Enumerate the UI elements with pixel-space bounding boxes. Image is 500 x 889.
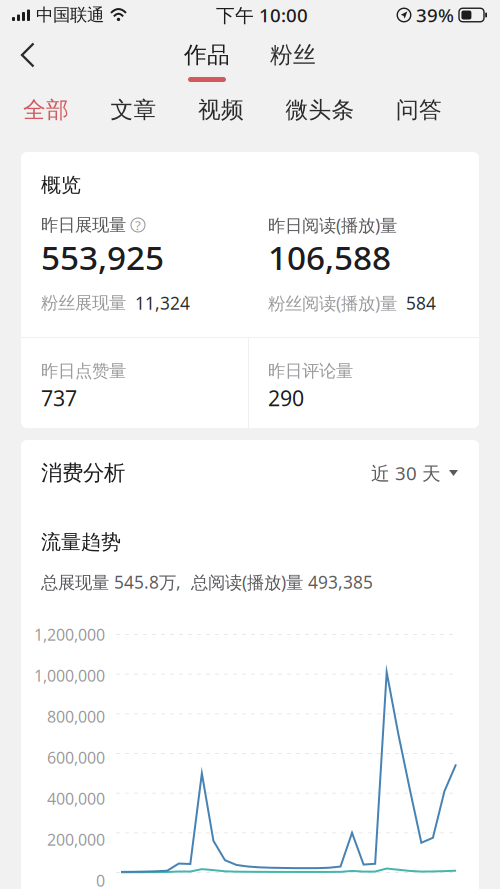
staticText: 昨日阅读(播放)量 (268, 213, 397, 236)
button[interactable]: 微头条 (285, 93, 354, 147)
staticText: 553,925 (41, 235, 164, 279)
staticText: 1,000,000 (34, 665, 105, 686)
button[interactable]: 全部 (23, 93, 69, 147)
staticText: 600,000 (47, 747, 105, 768)
staticText: 问答 (396, 96, 442, 124)
staticText: 粉丝阅读(播放)量 (268, 291, 397, 314)
staticText: 584 (406, 291, 436, 314)
staticText: 流量趋势 (41, 530, 121, 554)
staticText: 下午 10:00 (216, 3, 308, 27)
staticText: 39% (416, 3, 454, 27)
button[interactable]: 文章 (110, 93, 156, 147)
staticText: 800,000 (47, 706, 105, 727)
staticText: 1,200,000 (34, 624, 105, 645)
staticText: 昨日评论量 (268, 360, 353, 382)
staticText: 11,324 (135, 291, 190, 314)
staticText: 近 30 天 (371, 461, 441, 485)
staticText: 0 (96, 870, 105, 889)
staticText: 全部 (23, 96, 69, 124)
staticText: 106,588 (268, 235, 391, 279)
staticText: 文章 (110, 96, 156, 124)
staticText: 昨日展现量 (41, 214, 126, 236)
button[interactable]: 粉丝 (236, 30, 322, 82)
button[interactable]: 作品 (178, 30, 236, 82)
staticText: ? (135, 216, 141, 234)
button[interactable]: 问答 (396, 93, 442, 147)
staticText: 400,000 (47, 788, 105, 809)
staticText: 粉丝展现量 (41, 292, 126, 314)
staticText: 微头条 (285, 96, 354, 124)
button[interactable]: Back (0, 30, 58, 88)
staticText: 昨日点赞量 (41, 360, 126, 382)
staticText: 290 (268, 384, 304, 412)
staticText: 作品 (184, 41, 230, 69)
staticText: 概览 (41, 173, 81, 197)
button[interactable]: 近 30 天 (371, 460, 458, 486)
staticText: 粉丝 (270, 41, 316, 69)
staticText: 总展现量 545.8万, 总阅读(播放)量 493,385 (41, 570, 373, 593)
staticText: 消费分析 (41, 460, 125, 486)
staticText: 737 (41, 384, 77, 412)
staticText: 中国联通 (36, 4, 104, 26)
button[interactable]: 视频 (198, 93, 244, 147)
staticText: 视频 (198, 96, 244, 124)
staticText: 200,000 (47, 829, 105, 850)
